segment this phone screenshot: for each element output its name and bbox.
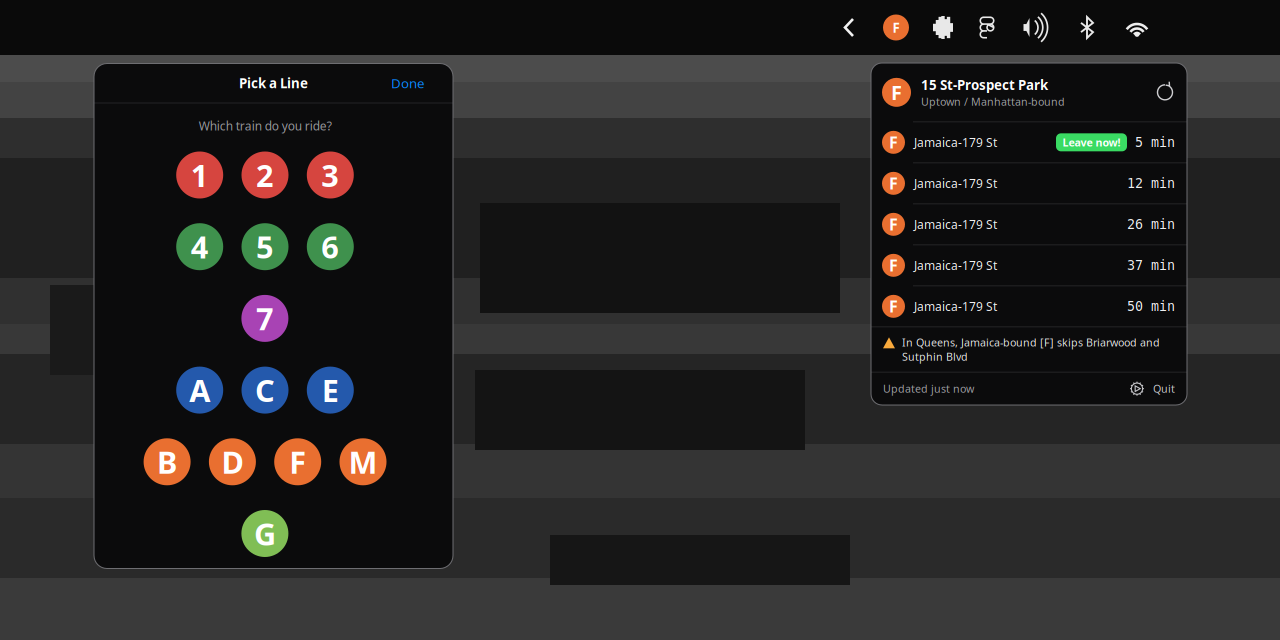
staticText: 12 min: [1127, 176, 1175, 191]
button[interactable]: 6: [307, 223, 354, 270]
button[interactable]: Refresh: [1153, 80, 1177, 104]
staticText: Updated just now: [883, 382, 974, 396]
staticText: A: [189, 370, 210, 410]
button[interactable]: Figma: [967, 0, 1007, 55]
staticText: Leave now!: [1062, 135, 1120, 149]
staticText: F: [289, 441, 306, 482]
button[interactable]: F: [871, 286, 1187, 326]
staticText: F: [889, 132, 898, 153]
staticText: 5 min: [1135, 135, 1175, 150]
staticText: 7: [256, 298, 274, 339]
staticText: F: [889, 296, 898, 317]
staticText: F: [891, 79, 902, 106]
button[interactable]: E: [307, 367, 354, 414]
button[interactable]: Volume: [1017, 0, 1057, 55]
staticText: In Queens, Jamaica-bound [F] skips Briar…: [902, 335, 1160, 364]
staticText: F: [889, 214, 898, 235]
staticText: C: [255, 370, 275, 410]
staticText: 3: [321, 155, 339, 195]
staticText: Jamaica-179 St: [914, 134, 997, 150]
staticText: G: [254, 513, 276, 554]
button[interactable]: A: [176, 367, 223, 414]
staticText: Jamaica-179 St: [914, 257, 997, 273]
staticText: Which train do you ride?: [199, 118, 332, 134]
button[interactable]: Done: [385, 70, 431, 96]
button[interactable]: Bluetooth: [1067, 0, 1107, 55]
button[interactable]: F train line status: [876, 0, 916, 55]
staticText: Quit: [1153, 382, 1175, 396]
button[interactable]: F: [871, 122, 1187, 162]
staticText: D: [221, 441, 243, 482]
button[interactable]: Quit: [1130, 382, 1175, 396]
button[interactable]: G: [241, 510, 288, 557]
staticText: Uptown / Manhattan-bound: [921, 95, 1065, 109]
button[interactable]: 2: [241, 151, 288, 198]
staticText: Jamaica-179 St: [914, 175, 997, 191]
staticText: 6: [321, 226, 339, 267]
button[interactable]: Audio levels: [923, 0, 963, 55]
staticText: 15 St-Prospect Park: [921, 76, 1048, 94]
button[interactable]: B: [144, 438, 191, 485]
button[interactable]: 1: [176, 151, 223, 198]
staticText: 26 min: [1127, 217, 1175, 232]
staticText: Jamaica-179 St: [914, 216, 997, 232]
button[interactable]: 7: [241, 295, 288, 342]
button[interactable]: C: [241, 367, 288, 414]
button[interactable]: M: [339, 438, 386, 485]
staticText: F: [889, 173, 898, 194]
staticText: E: [322, 370, 339, 410]
staticText: M: [348, 441, 377, 482]
button[interactable]: 3: [307, 151, 354, 198]
staticText: Jamaica-179 St: [914, 298, 997, 314]
button[interactable]: F: [274, 438, 321, 485]
button[interactable]: 5: [241, 223, 288, 270]
staticText: 1: [191, 155, 209, 195]
staticText: Done: [391, 74, 425, 92]
button[interactable]: F: [871, 245, 1187, 285]
staticText: 37 min: [1127, 258, 1175, 273]
staticText: B: [157, 441, 177, 482]
button[interactable]: F: [871, 204, 1187, 244]
button[interactable]: Back: [834, 0, 864, 55]
staticText: 4: [191, 226, 209, 267]
staticText: 5: [256, 226, 274, 267]
staticText: 50 min: [1127, 299, 1175, 314]
button[interactable]: F: [871, 163, 1187, 203]
button[interactable]: Wi-Fi: [1117, 0, 1157, 55]
staticText: Pick a Line: [239, 74, 308, 92]
button[interactable]: 4: [176, 223, 223, 270]
staticText: 2: [256, 155, 274, 195]
staticText: F: [892, 19, 899, 36]
staticText: F: [889, 255, 898, 276]
button[interactable]: D: [209, 438, 256, 485]
